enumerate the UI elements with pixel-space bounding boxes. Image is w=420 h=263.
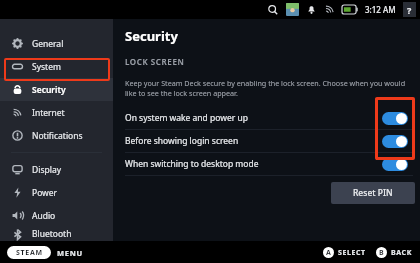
- staticText: ?: [407, 4, 412, 16]
- button[interactable]: Reset PIN: [331, 182, 415, 204]
- staticText: System: [32, 61, 61, 73]
- button[interactable]: Friends: [286, 3, 299, 16]
- staticText: Bluetooth: [32, 228, 72, 240]
- button[interactable]: Power: [0, 181, 113, 204]
- button[interactable]: Notifications: [306, 4, 317, 15]
- button[interactable]: B: [376, 247, 412, 258]
- staticText: General: [32, 38, 64, 50]
- staticText: Display: [32, 164, 61, 176]
- button[interactable]: Bluetooth: [0, 227, 113, 241]
- staticText: Keep your Steam Deck secure by enabling …: [125, 78, 409, 98]
- button[interactable]: Before showing login screen: [125, 130, 415, 152]
- button[interactable]: System: [0, 55, 113, 78]
- staticText: Notifications: [32, 130, 83, 142]
- staticText: Before showing login screen: [125, 135, 239, 147]
- staticText: Power: [32, 187, 58, 199]
- staticText: STEAM: [16, 248, 43, 258]
- staticText: 3:12 AM: [365, 4, 396, 15]
- button[interactable]: Audio: [0, 204, 113, 227]
- staticText: MENU: [57, 248, 83, 258]
- button[interactable]: Network: [324, 4, 335, 15]
- button[interactable]: Security: [0, 78, 113, 101]
- staticText: When switching to desktop mode: [125, 158, 259, 170]
- staticText: Internet: [32, 107, 65, 119]
- button[interactable]: Display: [0, 158, 113, 181]
- button[interactable]: Notifications: [0, 124, 113, 147]
- staticText: On system wake and power up: [125, 112, 248, 124]
- button[interactable]: On system wake and power up: [125, 107, 415, 129]
- button[interactable]: Search: [267, 4, 279, 16]
- staticText: BACK: [391, 248, 412, 258]
- staticText: Security: [32, 84, 66, 96]
- staticText: B: [379, 248, 384, 258]
- button[interactable]: Internet: [0, 101, 113, 124]
- staticText: SELECT: [338, 248, 366, 258]
- staticText: Audio: [32, 210, 56, 222]
- button[interactable]: When switching to desktop mode: [125, 153, 415, 175]
- staticText: LOCK SCREEN: [125, 56, 185, 67]
- staticText: Security: [125, 27, 178, 45]
- button[interactable]: A: [323, 247, 366, 258]
- button[interactable]: Battery: [342, 5, 358, 14]
- button[interactable]: Help: [403, 2, 416, 17]
- staticText: A: [326, 248, 331, 258]
- button[interactable]: General: [0, 32, 113, 55]
- staticText: Reset PIN: [353, 187, 393, 199]
- button[interactable]: STEAM: [7, 246, 51, 259]
